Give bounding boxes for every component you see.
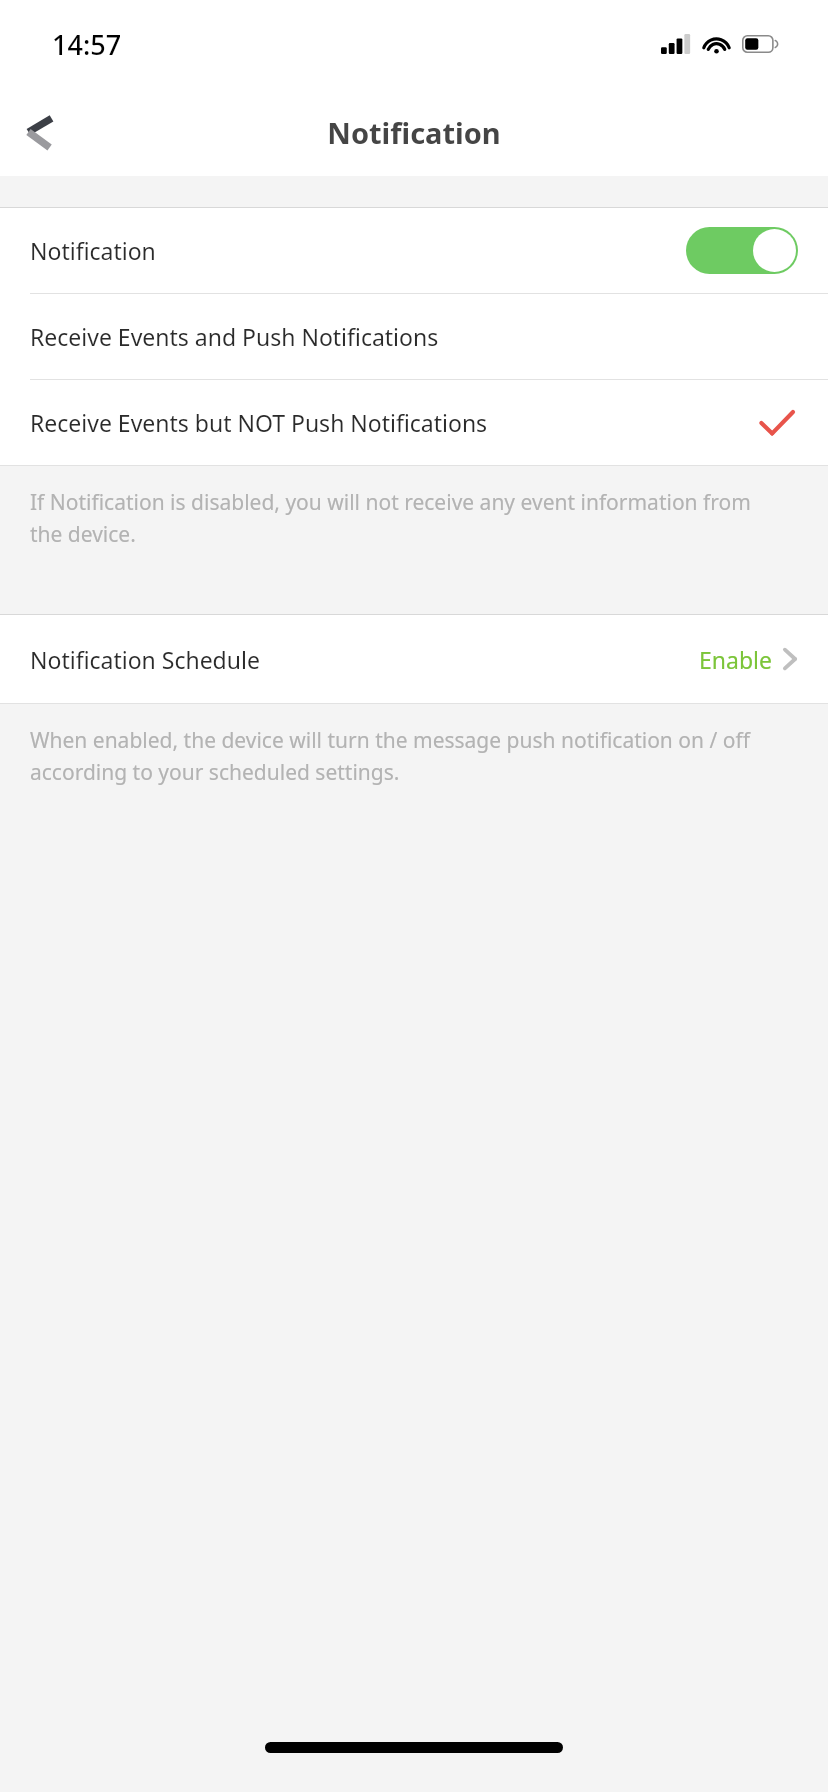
- button[interactable]: Notification toggle, on: [686, 227, 798, 274]
- button[interactable]: Receive Events but NOT Push Notification…: [0, 380, 828, 465]
- staticText: Notification Schedule: [30, 644, 260, 675]
- staticText: 14:57: [52, 26, 122, 63]
- button[interactable]: Notification Schedule: [0, 615, 828, 703]
- button[interactable]: Notification: [0, 208, 828, 293]
- staticText: Enable: [699, 644, 772, 675]
- staticText: Notification: [327, 113, 501, 152]
- staticText: When enabled, the device will turn the m…: [30, 726, 768, 786]
- button[interactable]: Receive Events and Push Notifications: [0, 294, 828, 379]
- staticText: Receive Events and Push Notifications: [30, 321, 439, 352]
- staticText: Receive Events but NOT Push Notification…: [30, 407, 488, 438]
- staticText: Notification: [30, 235, 156, 266]
- staticText: If Notification is disabled, you will no…: [30, 488, 768, 548]
- button[interactable]: Back: [0, 92, 80, 172]
